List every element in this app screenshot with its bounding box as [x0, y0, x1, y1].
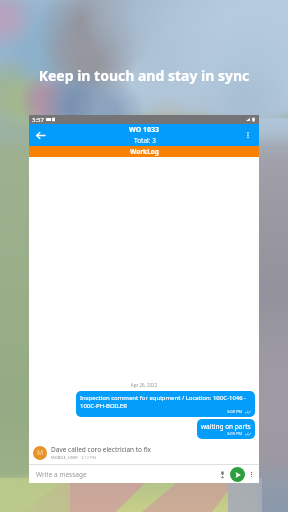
staticText: 3:09 PM: [227, 431, 243, 436]
staticText: Inspection comment for equipment / Locat…: [80, 394, 247, 409]
staticText: WorkLog: [130, 147, 159, 156]
staticText: 3:57: [32, 116, 44, 124]
staticText: MOBILE_USER: [51, 455, 78, 460]
staticText: 3:08 PM: [227, 409, 243, 414]
button[interactable]: More: [246, 469, 257, 480]
staticText: Apr 26, 2022: [29, 382, 259, 388]
button[interactable]: Voice input: [215, 467, 229, 481]
staticText: Write a message: [36, 470, 87, 479]
staticText: M: [37, 448, 44, 458]
button[interactable]: Back: [29, 124, 51, 146]
button[interactable]: Send: [230, 467, 245, 482]
staticText: Total: 3: [134, 136, 156, 145]
button[interactable]: More options: [237, 124, 259, 146]
staticText: WO 1033: [129, 125, 160, 135]
staticText: waiting on parts: [201, 422, 251, 431]
staticText: Keep in touch and stay in sync: [0, 66, 288, 85]
staticText: Dave called coro electrician to fix: [51, 445, 152, 454]
staticText: 3:12 PM: [81, 455, 97, 460]
